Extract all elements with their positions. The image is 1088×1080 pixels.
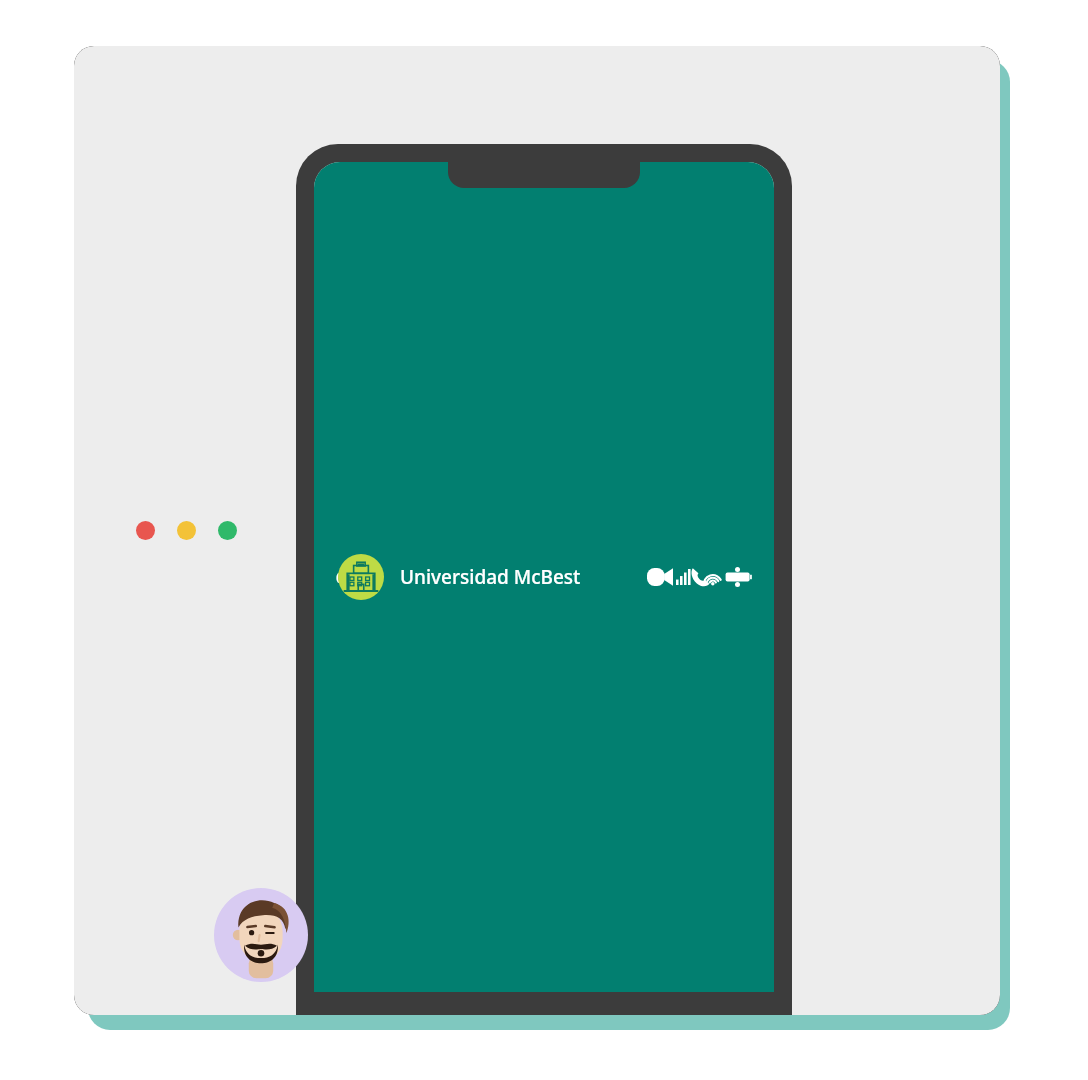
staticText: Universidad McBest [400,564,581,590]
button[interactable]: Close [136,521,155,540]
button[interactable]: Contact avatar [338,554,384,600]
staticText: 08:01 [336,568,372,587]
button[interactable]: Minimize [177,521,196,540]
button[interactable]: More options [720,555,754,599]
button[interactable]: Universidad McBest [400,564,640,590]
button[interactable]: Video call [640,555,680,599]
button[interactable]: Voice call [680,555,720,599]
button[interactable]: Maximize [218,521,237,540]
